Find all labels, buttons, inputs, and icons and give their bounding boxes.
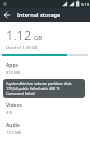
staticText: 0 B — [6, 110, 12, 115]
staticText: 14.47 MB — [6, 90, 24, 95]
staticText: /system/bin/sm volume partition disk: — [6, 81, 72, 86]
staticText: Internal storage — [17, 11, 61, 19]
button[interactable]: Audio — [0, 118, 90, 138]
button[interactable]: Back — [0, 8, 14, 22]
button[interactable]: Videos — [0, 98, 90, 118]
button[interactable]: Images — [0, 78, 90, 98]
staticText: Apps — [6, 62, 18, 69]
staticText: Audio — [6, 122, 20, 129]
staticText: 9:19 — [81, 2, 89, 7]
staticText: Images — [6, 82, 24, 89]
staticText: 179,64 public failed with 400 1) — [6, 86, 60, 91]
staticText: 812 MB — [6, 70, 21, 75]
button[interactable]: Apps — [0, 58, 90, 78]
staticText: 1.01 MB — [6, 130, 22, 135]
staticText: Videos — [6, 102, 22, 109]
staticText: Command failed — [6, 91, 35, 96]
staticText: Used of 1.50 GB — [6, 45, 38, 51]
staticText: 1.12 — [6, 26, 32, 44]
staticText: GB — [34, 34, 43, 42]
